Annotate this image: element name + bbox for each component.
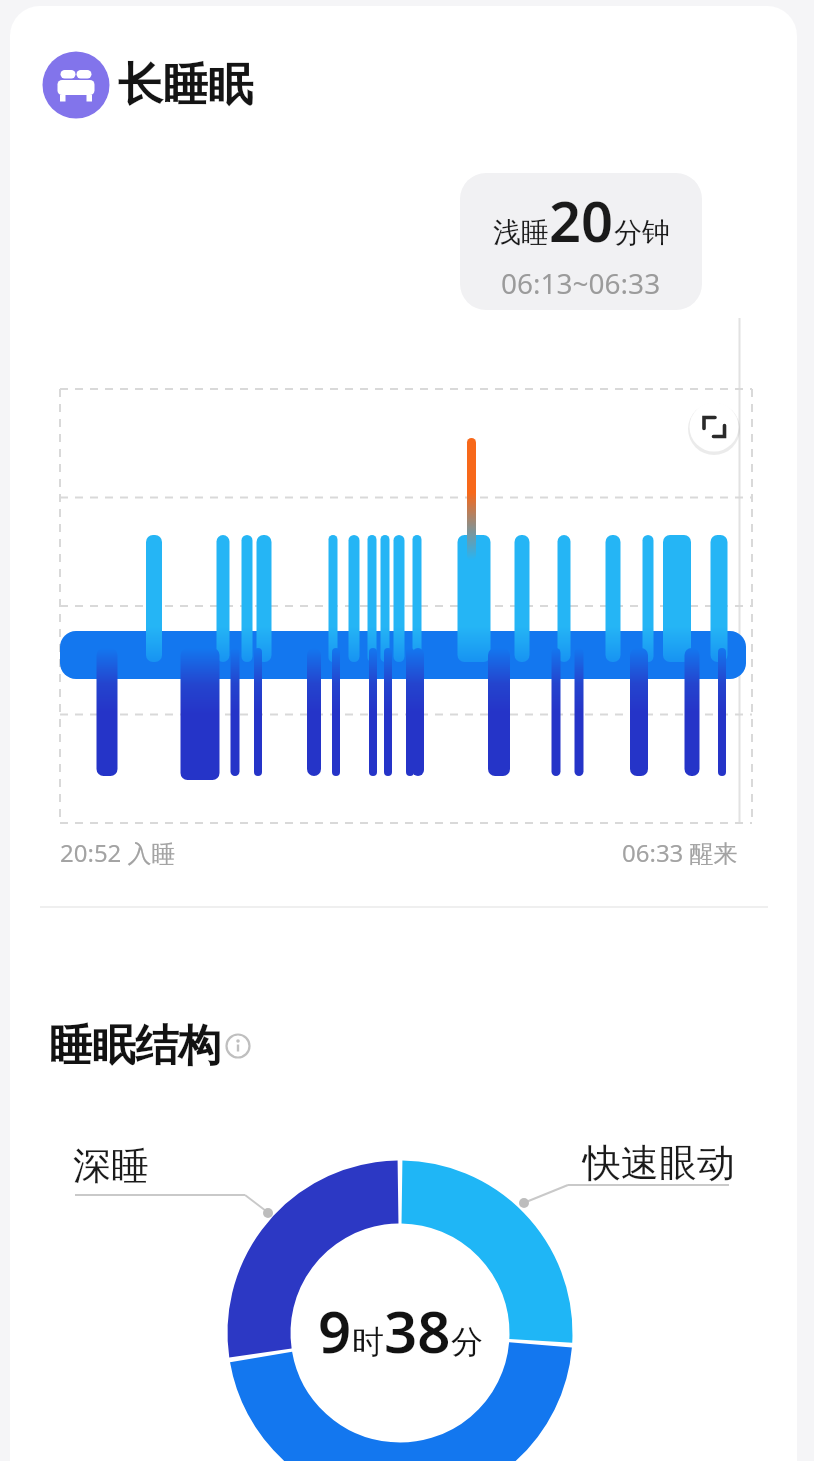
staticText: 浅睡 (493, 215, 549, 250)
staticText: 深睡 (73, 1142, 149, 1190)
staticText: 睡眠结构 (49, 1019, 221, 1073)
staticText: 分钟 (614, 215, 670, 250)
button[interactable] (43, 51, 253, 117)
staticText: 分 (451, 1322, 483, 1362)
staticText: 长睡眠 (118, 57, 253, 114)
staticText: 时 (352, 1322, 384, 1362)
button[interactable]: 浅睡 (460, 173, 702, 310)
staticText: 快速眼动 (583, 1139, 735, 1187)
staticText: 20:52 入睡 (60, 836, 176, 869)
staticText: 06:13~06:33 (501, 264, 661, 302)
staticText: 20 (549, 182, 614, 258)
staticText: 06:33 醒来 (622, 836, 738, 869)
staticText: 9 (318, 1291, 352, 1370)
staticText: 38 (384, 1291, 451, 1370)
button[interactable] (689, 402, 739, 452)
button[interactable] (223, 1031, 253, 1061)
